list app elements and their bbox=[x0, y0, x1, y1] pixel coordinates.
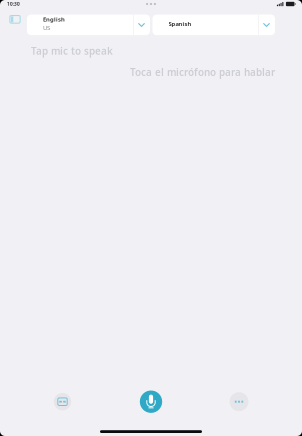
button[interactable]: English bbox=[27, 15, 150, 35]
staticText: Toca el micrófono para hablar bbox=[130, 65, 275, 79]
staticText: English bbox=[43, 15, 65, 23]
button[interactable]: More options bbox=[227, 390, 251, 414]
button[interactable]: Spanish bbox=[152, 15, 275, 35]
staticText: Spanish bbox=[168, 20, 191, 28]
staticText: 10:30 bbox=[7, 1, 20, 7]
staticText: US bbox=[43, 23, 50, 32]
button[interactable]: Microphone bbox=[136, 387, 166, 417]
button[interactable]: Keyboard bbox=[50, 390, 74, 414]
button[interactable]: Show Sidebar bbox=[1, 15, 27, 35]
staticText: Tap mic to speak bbox=[31, 44, 113, 57]
